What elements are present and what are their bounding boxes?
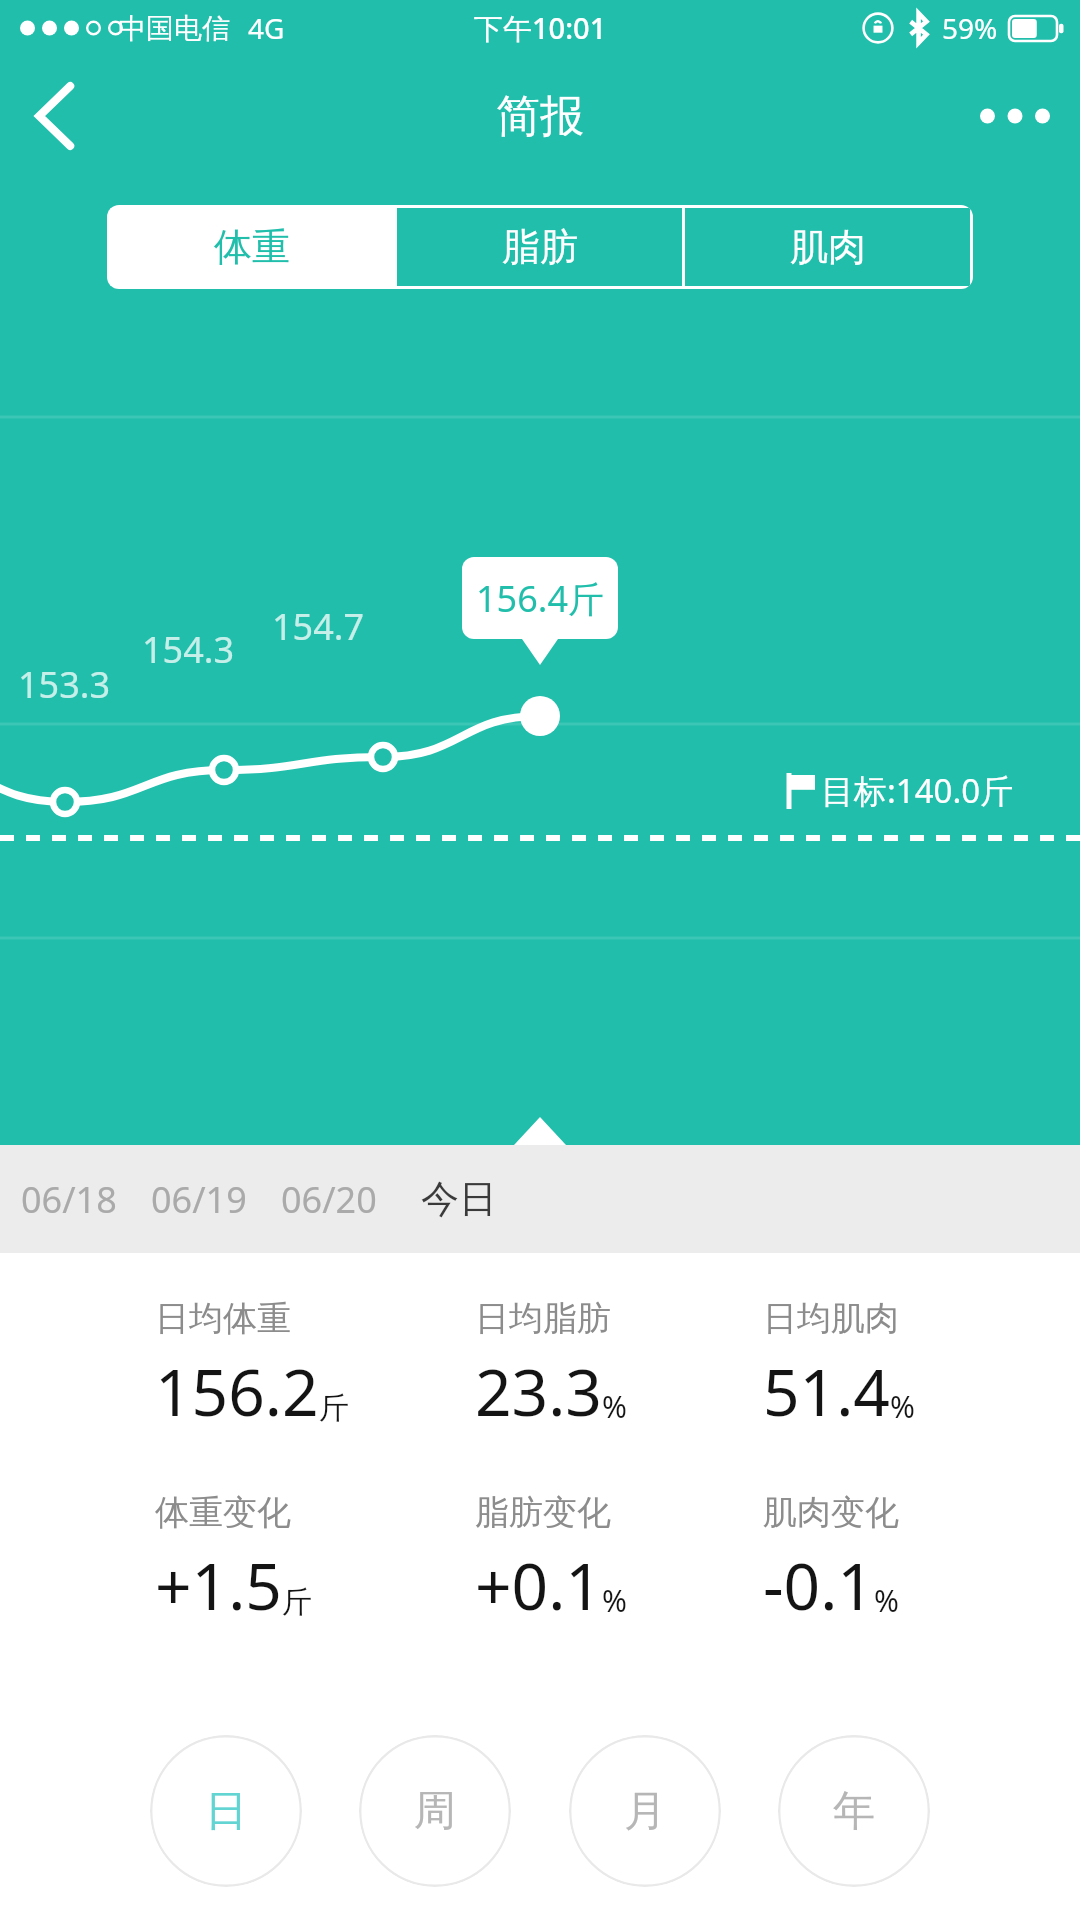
button[interactable]: 月 — [569, 1735, 721, 1887]
staticText: 体重 — [214, 223, 290, 271]
staticText: +1.5 — [155, 1542, 282, 1629]
staticText: 日均脂肪 — [475, 1297, 611, 1340]
staticText: 目标:140.0斤 — [821, 768, 1014, 813]
staticText: % — [602, 1580, 627, 1621]
staticText: 154.3 — [142, 625, 235, 674]
staticText: 中国电信 — [118, 11, 230, 46]
button[interactable]: 周 — [359, 1735, 511, 1887]
staticText: % — [890, 1386, 915, 1427]
button[interactable]: 体重 — [110, 208, 394, 286]
staticText: 153.3 — [18, 660, 111, 709]
staticText: 今日 — [421, 1175, 497, 1223]
staticText: 日均体重 — [155, 1297, 291, 1340]
staticText: -0.1 — [763, 1542, 874, 1629]
staticText: 肌肉变化 — [763, 1491, 899, 1534]
staticText: 06/18 — [21, 1175, 117, 1224]
staticText: % — [602, 1386, 627, 1427]
staticText: +0.1 — [475, 1542, 602, 1629]
staticText: 156.2 — [155, 1348, 319, 1435]
staticText: 4G — [248, 9, 285, 47]
staticText: 23.3 — [475, 1348, 602, 1435]
staticText: 59% — [942, 9, 998, 47]
staticText: 脂肪 — [502, 223, 578, 271]
staticText: 06/20 — [281, 1175, 377, 1224]
staticText: 日均肌肉 — [763, 1297, 899, 1340]
staticText: 体重变化 — [155, 1491, 291, 1534]
staticText: 154.7 — [272, 602, 365, 651]
staticText: 06/19 — [151, 1175, 247, 1224]
button[interactable]: 脂肪 — [397, 208, 682, 286]
button[interactable]: 06/19 — [134, 1145, 264, 1253]
staticText: 斤 — [282, 1583, 312, 1621]
staticText: 年 — [833, 1785, 875, 1838]
staticText: 斤 — [319, 1389, 349, 1427]
staticText: 日 — [205, 1785, 247, 1838]
staticText: 156.4斤 — [476, 574, 605, 623]
button[interactable]: 肌肉 — [685, 208, 970, 286]
staticText: 月 — [624, 1785, 666, 1838]
staticText: 简报 — [496, 89, 584, 144]
staticText: 周 — [414, 1785, 456, 1838]
staticText: 51.4 — [763, 1348, 890, 1435]
button[interactable]: More options — [950, 56, 1080, 176]
button[interactable]: 06/20 — [264, 1145, 394, 1253]
button[interactable]: 今日 — [394, 1145, 524, 1253]
button[interactable]: 日 — [150, 1735, 302, 1887]
button[interactable]: Back — [0, 56, 112, 176]
staticText: 下午10:01 — [474, 8, 607, 48]
staticText: 肌肉 — [790, 223, 866, 271]
staticText: % — [874, 1580, 899, 1621]
button[interactable]: 06/18 — [4, 1145, 134, 1253]
button[interactable]: 年 — [778, 1735, 930, 1887]
staticText: 脂肪变化 — [475, 1491, 611, 1534]
